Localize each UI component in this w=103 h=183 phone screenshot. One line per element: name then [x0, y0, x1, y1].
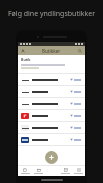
- button[interactable]: Mere: [72, 165, 85, 176]
- button[interactable]: Butik: [18, 55, 85, 73]
- button[interactable]: Følg: [69, 101, 82, 106]
- button[interactable]: Følg: [69, 77, 82, 82]
- button[interactable]: Butikker: [32, 165, 45, 176]
- button[interactable]: Menu: [20, 48, 26, 54]
- button[interactable]: Følg: [69, 137, 82, 142]
- button[interactable]: Følg: [18, 110, 85, 121]
- button[interactable]: Følg: [69, 113, 82, 118]
- button[interactable]: Følg: [18, 134, 85, 145]
- staticText: Følg dine yndlingsbutikker: [0, 9, 103, 19]
- button[interactable]: Følg: [18, 74, 85, 85]
- button[interactable]: Følg: [69, 89, 82, 94]
- button[interactable]: Søg: [77, 48, 83, 54]
- button[interactable]: Følg: [18, 122, 85, 133]
- button[interactable]: Følg: [18, 98, 85, 109]
- staticText: Butik: [21, 57, 31, 62]
- staticText: Butikker: [42, 48, 61, 54]
- button[interactable]: Tilbud: [18, 165, 32, 176]
- button[interactable]: Indkøbsliste: [59, 165, 72, 176]
- button[interactable]: Følg: [18, 86, 85, 97]
- button[interactable]: Tilføj butik: [45, 151, 58, 164]
- button[interactable]: Følg: [69, 125, 82, 130]
